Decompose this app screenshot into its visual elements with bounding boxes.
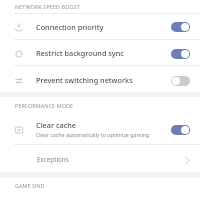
staticText: NETWORK SPEED BOOST bbox=[15, 3, 81, 10]
button[interactable] bbox=[171, 125, 190, 135]
button[interactable]: Clear cache bbox=[0, 113, 200, 144]
button[interactable]: Prevent switching networks bbox=[0, 67, 200, 94]
staticText: Prevent switching networks bbox=[36, 75, 133, 85]
staticText: Restrict background sync bbox=[36, 48, 124, 58]
button[interactable]: Connection priority bbox=[0, 14, 200, 40]
staticText: Clear cache bbox=[36, 120, 77, 130]
button[interactable] bbox=[171, 22, 190, 32]
button[interactable] bbox=[171, 49, 190, 59]
staticText: Connection priority bbox=[36, 22, 104, 32]
staticText: GAME DND bbox=[15, 182, 45, 189]
other: Open exceptions bbox=[184, 156, 193, 165]
staticText: PERFORMANCE MODE bbox=[15, 102, 74, 109]
staticText: Exceptions bbox=[37, 155, 69, 164]
button[interactable]: Exceptions bbox=[0, 145, 200, 171]
staticText: Clear cache automatically to optimize ga… bbox=[36, 131, 150, 138]
button[interactable] bbox=[171, 76, 190, 86]
button[interactable]: Restrict background sync bbox=[0, 40, 200, 67]
